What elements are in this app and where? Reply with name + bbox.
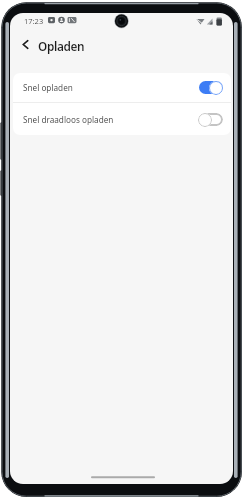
button[interactable]: Snel opladen [13,73,231,102]
staticText: Snel opladen [23,82,73,93]
staticText: 17:23 [24,16,44,26]
button[interactable] [198,112,223,127]
button[interactable] [16,35,35,54]
staticText: Snel draadloos opladen [23,114,114,125]
staticText: Opladen [38,38,85,54]
button[interactable] [198,80,223,95]
button[interactable]: Snel draadloos opladen [13,103,231,135]
